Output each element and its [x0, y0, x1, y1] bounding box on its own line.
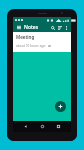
button[interactable]: Add note [55, 101, 66, 112]
staticText: Meeting [16, 34, 35, 40]
staticText: Notes [24, 24, 39, 31]
button[interactable]: Recent apps [54, 122, 63, 131]
button[interactable]: Open navigation drawer [15, 24, 22, 31]
button[interactable]: Back [21, 122, 30, 131]
button[interactable]: Home [38, 122, 47, 131]
button[interactable]: Meeting [13, 32, 71, 52]
button[interactable]: Sort [56, 24, 63, 31]
staticText: about 10 hours ago [16, 44, 46, 48]
button[interactable]: More options [63, 25, 69, 31]
button[interactable]: Search [49, 24, 56, 31]
